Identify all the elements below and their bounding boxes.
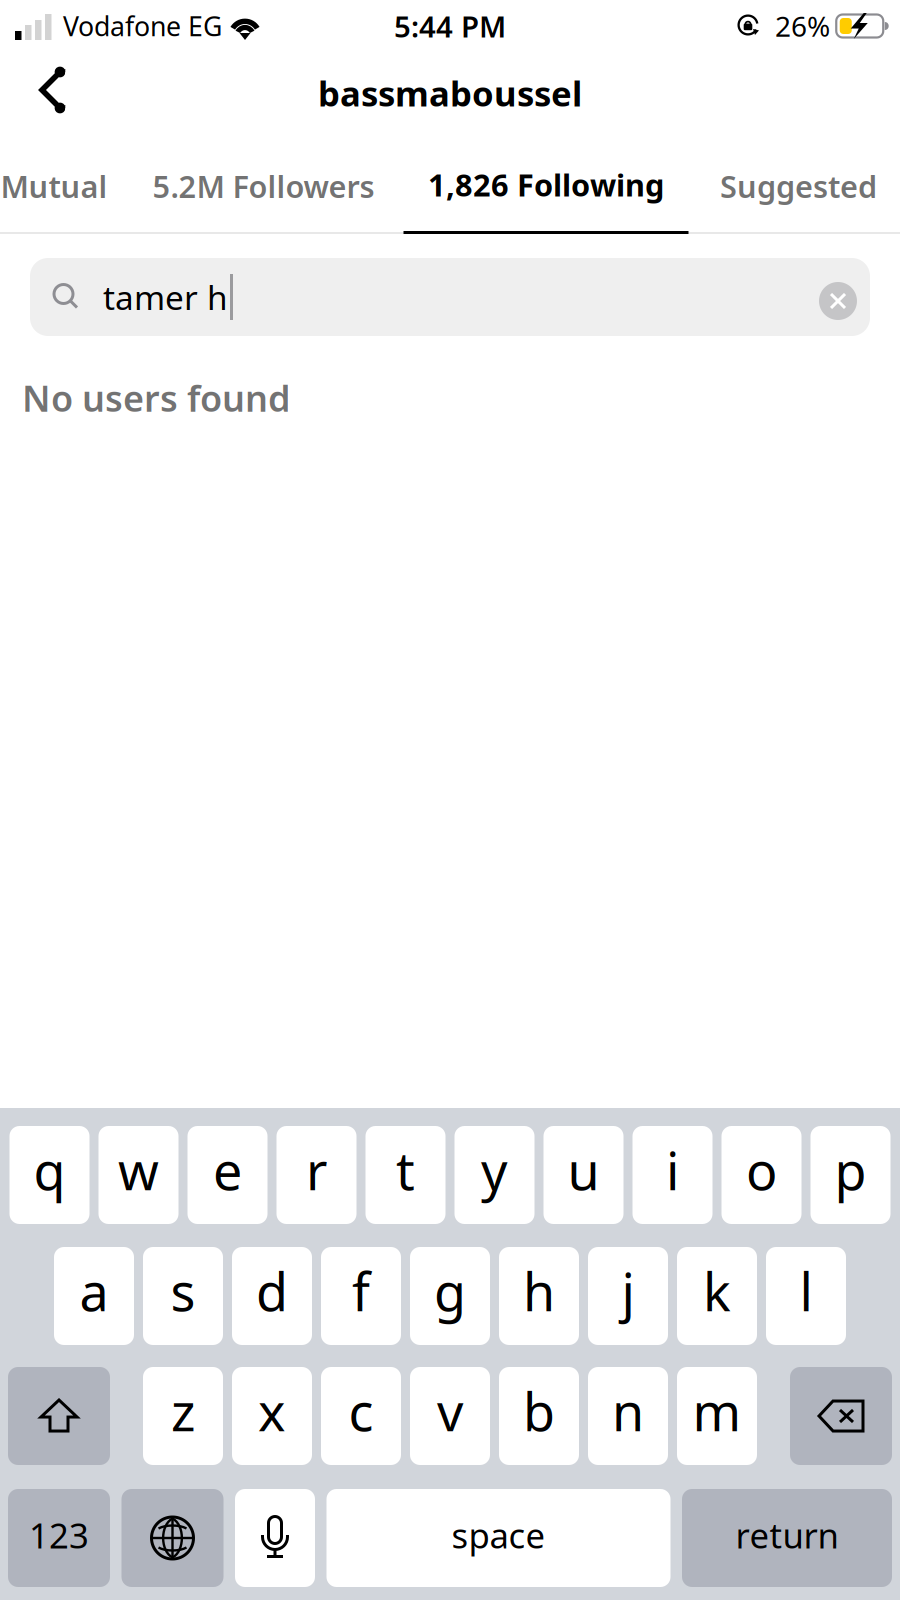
staticText: s — [170, 1256, 195, 1326]
button[interactable]: z — [143, 1367, 223, 1465]
button[interactable]: e — [187, 1126, 267, 1224]
staticText: i — [666, 1135, 679, 1205]
button[interactable]: 1,826 Following — [403, 138, 688, 234]
staticText: y — [481, 1135, 508, 1205]
button[interactable]: l — [766, 1247, 846, 1345]
button[interactable]: n — [588, 1367, 668, 1465]
staticText: a — [79, 1256, 108, 1326]
button[interactable]: k — [677, 1247, 757, 1345]
button[interactable]: Shift — [8, 1367, 110, 1465]
button[interactable]: d — [232, 1247, 312, 1345]
button[interactable]: Suggested — [688, 138, 900, 234]
button[interactable]: return — [682, 1489, 892, 1587]
staticText: z — [171, 1376, 195, 1446]
button[interactable]: s — [143, 1247, 223, 1345]
staticText: tamer h — [103, 275, 228, 319]
staticText: d — [256, 1256, 288, 1326]
button[interactable]: space — [326, 1489, 670, 1587]
staticText: f — [352, 1256, 370, 1326]
button[interactable]: 123 — [8, 1489, 110, 1587]
button[interactable]: f — [321, 1247, 401, 1345]
button[interactable]: p — [810, 1126, 890, 1224]
staticText: c — [348, 1376, 373, 1446]
staticText: m — [692, 1376, 741, 1446]
staticText: bassmaboussel — [318, 70, 582, 116]
staticText: 26% — [775, 7, 830, 45]
button[interactable]: Mutual — [9, 138, 115, 234]
staticText: v — [437, 1376, 463, 1446]
staticText: n — [612, 1376, 644, 1446]
button[interactable]: c — [321, 1367, 401, 1465]
staticText: e — [213, 1135, 242, 1205]
button[interactable]: v — [410, 1367, 490, 1465]
staticText: x — [258, 1376, 286, 1446]
staticText: Mutual — [0, 166, 107, 206]
staticText: 5:44 PM — [394, 6, 506, 45]
staticText: Vodafone EG — [63, 8, 222, 44]
button[interactable]: t — [365, 1126, 445, 1224]
staticText: t — [396, 1135, 415, 1205]
button[interactable]: Back — [0, 58, 87, 132]
staticText: o — [746, 1135, 777, 1205]
staticText: r — [306, 1135, 327, 1205]
staticText: w — [118, 1135, 159, 1205]
staticText: k — [703, 1256, 731, 1326]
staticText: b — [523, 1376, 555, 1446]
button[interactable]: q — [9, 1126, 89, 1224]
button[interactable]: j — [588, 1247, 668, 1345]
staticText: 5.2M Followers — [152, 166, 374, 206]
button[interactable]: i — [632, 1126, 712, 1224]
button[interactable]: u — [543, 1126, 623, 1224]
button[interactable]: w — [98, 1126, 178, 1224]
button[interactable]: o — [721, 1126, 801, 1224]
button[interactable]: m — [677, 1367, 757, 1465]
button[interactable]: Dictate — [235, 1489, 315, 1587]
button[interactable]: g — [410, 1247, 490, 1345]
staticText: g — [434, 1256, 466, 1326]
staticText: j — [621, 1256, 634, 1326]
staticText: return — [735, 1512, 838, 1558]
staticText: No users found — [22, 374, 291, 422]
button[interactable]: x — [232, 1367, 312, 1465]
button[interactable]: h — [499, 1247, 579, 1345]
staticText: h — [523, 1256, 555, 1326]
staticText: 1,826 Following — [428, 164, 664, 205]
button[interactable]: Clear text — [819, 278, 870, 316]
button[interactable]: Next keyboard — [121, 1489, 223, 1587]
staticText: p — [834, 1135, 866, 1205]
button[interactable]: Delete — [790, 1367, 892, 1465]
button[interactable]: r — [276, 1126, 356, 1224]
staticText: q — [33, 1135, 65, 1205]
button[interactable]: 5.2M Followers — [115, 138, 403, 234]
staticText: l — [799, 1256, 812, 1326]
button[interactable]: b — [499, 1367, 579, 1465]
button[interactable]: y — [454, 1126, 534, 1224]
staticText: 123 — [29, 1512, 89, 1558]
staticText: u — [567, 1135, 599, 1205]
staticText: Suggested — [720, 166, 877, 206]
button[interactable]: a — [54, 1247, 134, 1345]
staticText: space — [451, 1512, 545, 1558]
